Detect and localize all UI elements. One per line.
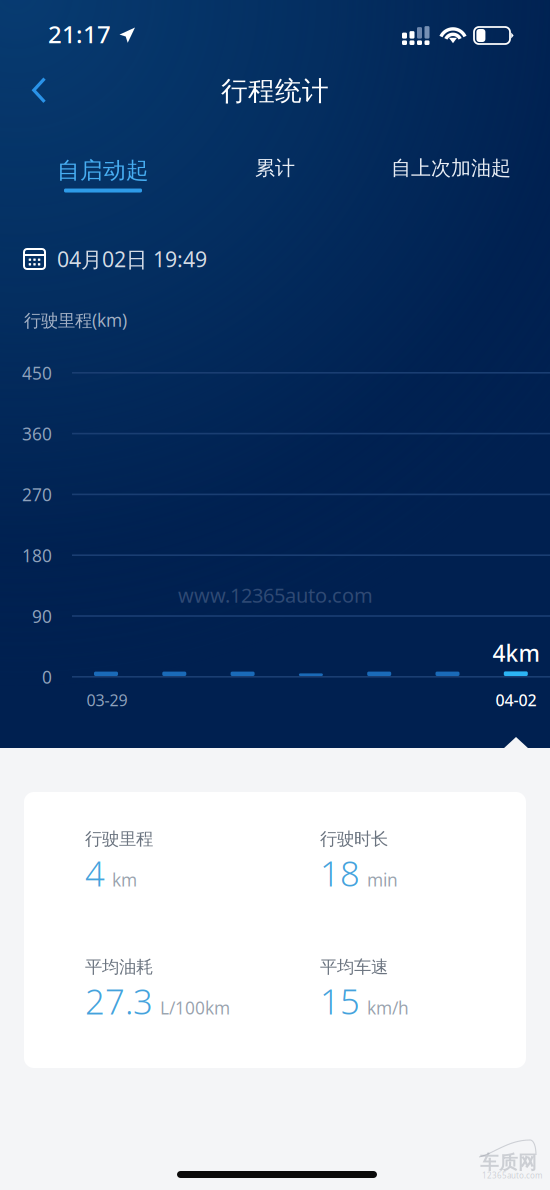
staticText: 270 <box>22 483 52 506</box>
staticText: 450 <box>22 361 52 384</box>
staticText: 累计 <box>255 156 295 180</box>
button[interactable]: Back <box>18 64 66 117</box>
staticText: 4km <box>492 638 539 668</box>
button[interactable]: 累计 <box>184 152 366 208</box>
button[interactable]: 自启动起 <box>12 146 194 202</box>
staticText: 15 <box>320 978 360 1024</box>
staticText: 行驶时长 <box>320 828 388 850</box>
staticText: 自上次加油起 <box>391 156 511 180</box>
staticText: min <box>367 868 398 891</box>
staticText: 行程统计 <box>221 75 329 107</box>
staticText: 平均车速 <box>320 956 388 978</box>
staticText: km/h <box>367 996 409 1019</box>
staticText: 12365auto.com <box>482 1170 542 1181</box>
staticText: 4 <box>85 850 105 896</box>
staticText: 90 <box>32 605 52 628</box>
staticText: 自启动起 <box>57 157 149 184</box>
staticText: L/100km <box>160 996 230 1019</box>
staticText: 21:17 <box>48 18 111 50</box>
staticText: 车质网 <box>480 1151 537 1174</box>
button[interactable]: 自上次加油起 <box>360 152 542 208</box>
staticText: 18 <box>320 850 360 896</box>
staticText: 平均油耗 <box>85 956 153 978</box>
staticText: 0 <box>42 665 52 688</box>
staticText: 03-29 <box>86 689 127 711</box>
staticText: 360 <box>22 422 52 445</box>
staticText: www.12365auto.com <box>178 582 373 608</box>
staticText: 04月02日 19:49 <box>57 245 207 273</box>
staticText: 行驶里程(km) <box>24 308 127 331</box>
staticText: 行驶里程 <box>85 828 153 850</box>
staticText: 180 <box>22 544 52 567</box>
staticText: km <box>112 868 137 891</box>
staticText: 27.3 <box>85 978 153 1024</box>
staticText: 04-02 <box>495 689 536 711</box>
